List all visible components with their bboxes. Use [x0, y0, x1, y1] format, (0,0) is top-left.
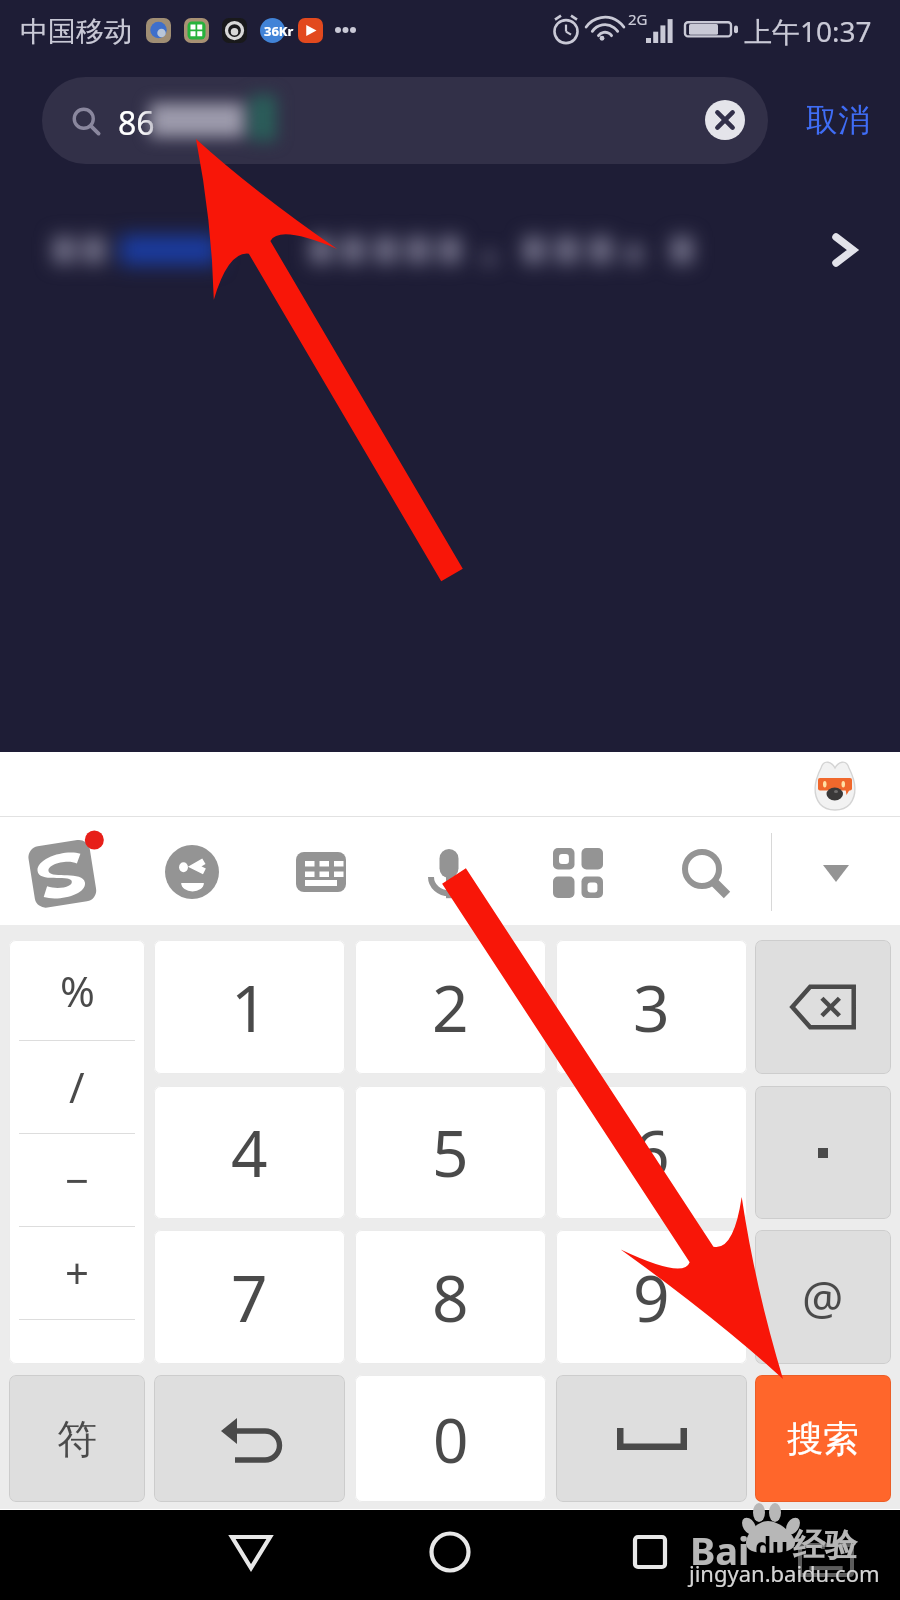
staticText: 9: [633, 1254, 670, 1341]
button[interactable]: Clear: [705, 100, 745, 140]
staticText: Bai: [690, 1524, 750, 1576]
staticText: +: [65, 1244, 90, 1301]
button[interactable]: Sogou menu: [27, 833, 101, 905]
button[interactable]: [9, 1319, 145, 1364]
button[interactable]: 取消: [790, 90, 886, 150]
staticText: 4: [231, 1109, 268, 1196]
button[interactable]: [755, 940, 891, 1074]
staticText: 8: [432, 1254, 469, 1341]
button[interactable]: [0, 200, 900, 300]
button[interactable]: /: [9, 1040, 145, 1133]
button[interactable]: Assistant: [810, 760, 860, 810]
button[interactable]: 4: [154, 1086, 345, 1219]
button[interactable]: @: [755, 1230, 891, 1364]
staticText: 搜索: [787, 1416, 859, 1461]
staticText: 6: [633, 1109, 670, 1196]
button[interactable]: Keyboard layout: [296, 852, 346, 892]
staticText: jingyan.baidu.com: [689, 1558, 880, 1588]
staticText: @: [802, 1266, 844, 1329]
button[interactable]: 5: [355, 1086, 546, 1219]
button[interactable]: 2: [355, 940, 546, 1074]
staticText: 2G: [628, 9, 648, 29]
button[interactable]: More tools: [553, 848, 603, 898]
button[interactable]: 86: [42, 77, 768, 164]
button[interactable]: 符: [9, 1375, 145, 1502]
button[interactable]: Recents: [600, 1510, 700, 1594]
staticText: 3: [633, 964, 670, 1051]
staticText: −: [65, 1151, 90, 1208]
button[interactable]: Voice input: [424, 845, 474, 901]
button[interactable]: 8: [355, 1230, 546, 1364]
staticText: 符: [57, 1414, 97, 1464]
button[interactable]: 7: [154, 1230, 345, 1364]
button[interactable]: Home: [400, 1510, 500, 1594]
staticText: du: [755, 1529, 789, 1564]
button[interactable]: Hide keyboard: [810, 851, 862, 891]
staticText: 取消: [806, 100, 870, 140]
button[interactable]: Search: [678, 847, 730, 899]
button[interactable]: +: [9, 1226, 145, 1319]
button[interactable]: %: [9, 940, 145, 1040]
staticText: 经验: [793, 1525, 857, 1565]
staticText: 上午10:37: [744, 12, 872, 50]
staticText: 0: [433, 1397, 469, 1481]
staticText: 1: [231, 964, 268, 1051]
button[interactable]: [154, 1375, 345, 1502]
button[interactable]: 9: [556, 1230, 747, 1364]
button[interactable]: 搜索: [755, 1375, 891, 1502]
staticText: /: [69, 1058, 85, 1115]
staticText: 中国移动: [20, 14, 132, 49]
staticText: 36Kr: [264, 22, 294, 40]
button[interactable]: Emoji: [165, 845, 219, 899]
button[interactable]: Back: [201, 1510, 301, 1594]
staticText: 2: [432, 964, 469, 1051]
button[interactable]: −: [9, 1133, 145, 1226]
button[interactable]: [755, 1086, 891, 1219]
staticText: 86: [118, 101, 155, 145]
button[interactable]: 1: [154, 940, 345, 1074]
staticText: 5: [432, 1109, 469, 1196]
staticText: %: [60, 962, 95, 1019]
staticText: 7: [231, 1254, 268, 1341]
button[interactable]: 6: [556, 1086, 747, 1219]
button[interactable]: [556, 1375, 747, 1502]
button[interactable]: 3: [556, 940, 747, 1074]
button[interactable]: 0: [355, 1375, 546, 1502]
